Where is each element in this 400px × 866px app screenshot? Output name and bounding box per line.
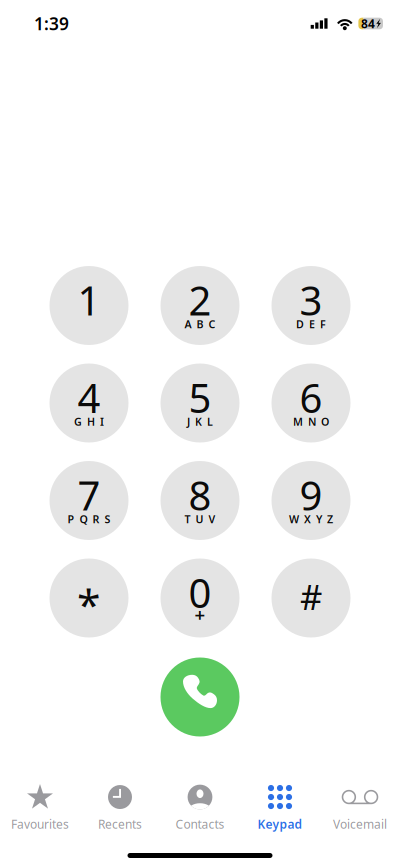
staticText: 9 <box>299 468 322 521</box>
staticText: Contacts <box>175 816 224 832</box>
staticText: MNO <box>293 414 329 429</box>
staticText: 7 <box>77 468 100 521</box>
staticText: 2 <box>188 273 211 326</box>
staticText: 84 <box>361 15 375 31</box>
staticText: JKL <box>187 414 213 429</box>
button[interactable]: Recents <box>80 785 160 831</box>
button[interactable]: 2 <box>160 266 239 345</box>
button[interactable]: Call <box>160 657 239 736</box>
button[interactable]: 0 <box>160 558 239 637</box>
staticText: WXYZ <box>289 512 333 526</box>
button[interactable]: 1 <box>49 266 128 345</box>
button[interactable]: * <box>49 558 128 637</box>
staticText: Voicemail <box>333 816 387 832</box>
button[interactable]: Favourites <box>0 785 80 831</box>
staticText: 3 <box>299 273 322 326</box>
staticText: PQRS <box>67 512 110 526</box>
staticText: Favourites <box>11 816 69 832</box>
button[interactable]: 4 <box>49 363 128 442</box>
staticText: DEF <box>296 317 326 331</box>
staticText: * <box>77 576 101 632</box>
staticText: 5 <box>188 371 211 424</box>
staticText: Recents <box>98 816 142 832</box>
button[interactable]: 7 <box>49 461 128 540</box>
button[interactable]: 9 <box>271 461 350 540</box>
staticText: + <box>194 602 205 627</box>
button[interactable]: # <box>271 558 350 637</box>
staticText: 1 <box>77 273 100 326</box>
button[interactable]: 6 <box>271 363 350 442</box>
button[interactable]: 3 <box>271 266 350 345</box>
staticText: 8 <box>188 468 211 521</box>
button[interactable]: 5 <box>160 363 239 442</box>
staticText: 1:39 <box>34 12 69 35</box>
staticText: # <box>300 573 322 619</box>
button[interactable]: 8 <box>160 461 239 540</box>
button[interactable]: Keypad <box>240 785 320 831</box>
staticText: Keypad <box>257 816 302 832</box>
staticText: 4 <box>77 371 100 424</box>
staticText: ABC <box>184 317 215 331</box>
staticText: TUV <box>184 512 215 526</box>
button[interactable]: Contacts <box>160 785 240 831</box>
staticText: GHI <box>74 414 104 429</box>
staticText: 6 <box>299 371 322 424</box>
staticText: 0 <box>188 566 211 619</box>
button[interactable]: Voicemail <box>320 785 400 831</box>
